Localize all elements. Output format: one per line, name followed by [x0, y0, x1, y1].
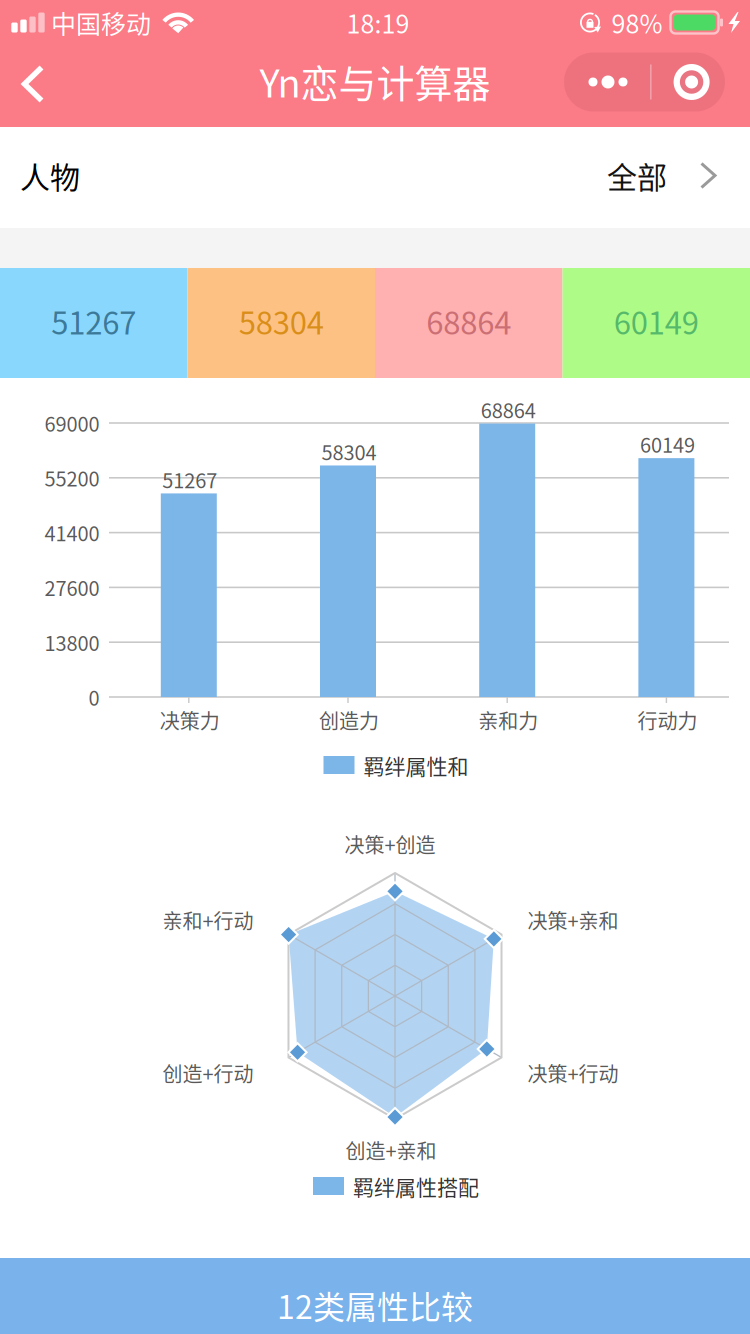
staticText: 18:19: [346, 4, 409, 41]
staticText: 41400: [44, 518, 99, 547]
staticText: 亲和+行动: [162, 905, 253, 934]
staticText: 人物: [20, 154, 80, 197]
staticText: 60149: [640, 430, 695, 459]
staticText: 12类属性比较: [277, 1282, 473, 1328]
staticText: 羁绊属性和: [363, 750, 468, 780]
staticText: 51267: [162, 465, 217, 494]
staticText: 27600: [44, 573, 99, 602]
staticText: 98%: [611, 4, 662, 41]
staticText: 决策+行动: [527, 1058, 618, 1087]
staticText: Yn恋与计算器: [259, 53, 490, 108]
staticText: 0: [88, 682, 99, 711]
staticText: 中国移动: [51, 4, 151, 41]
staticText: 决策+亲和: [527, 905, 618, 934]
button[interactable]: 58304: [187, 268, 375, 378]
button[interactable]: 60149: [562, 268, 750, 378]
button[interactable]: 全部: [607, 156, 718, 199]
staticText: 51267: [51, 299, 136, 343]
button[interactable]: Back: [0, 45, 66, 127]
staticText: 创造+亲和: [345, 1135, 436, 1164]
button[interactable]: 68864: [375, 268, 562, 378]
staticText: 创造力: [319, 705, 379, 734]
button[interactable]: 51267: [0, 268, 187, 378]
staticText: 决策+创造: [344, 829, 435, 858]
staticText: 创造+行动: [162, 1058, 253, 1087]
staticText: 13800: [44, 628, 99, 657]
staticText: 55200: [44, 463, 99, 492]
staticText: 行动力: [637, 705, 697, 734]
staticText: 全部: [607, 154, 667, 197]
staticText: 58304: [239, 299, 324, 343]
staticText: 亲和力: [478, 705, 538, 734]
staticText: 决策力: [160, 705, 220, 734]
button[interactable]: 12类属性比较: [0, 1258, 750, 1334]
staticText: 羁绊属性搭配: [353, 1171, 479, 1201]
staticText: 58304: [321, 437, 376, 466]
staticText: 68864: [426, 299, 511, 343]
button[interactable]: More options: [564, 56, 725, 115]
staticText: 60149: [614, 299, 699, 343]
staticText: 68864: [481, 395, 536, 424]
staticText: 69000: [44, 408, 99, 437]
